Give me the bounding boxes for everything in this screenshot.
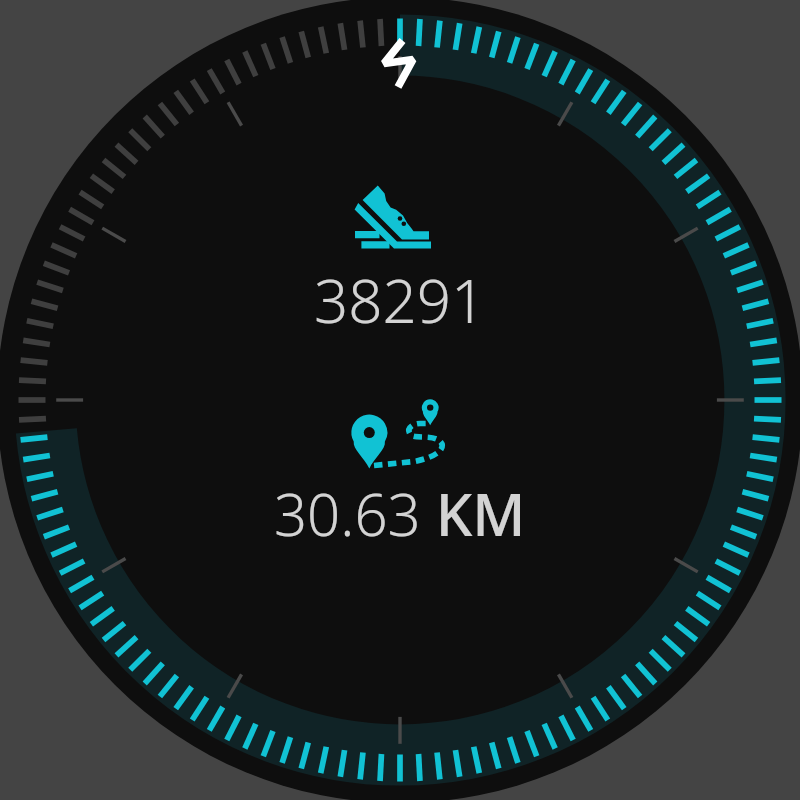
- staticText: 38291: [314, 259, 486, 341]
- staticText: 30.63 KM: [274, 474, 526, 553]
- button[interactable]: 38291: [280, 185, 520, 341]
- button[interactable]: 30.63 KM: [260, 398, 540, 553]
- button[interactable]: Charging: [374, 34, 426, 102]
